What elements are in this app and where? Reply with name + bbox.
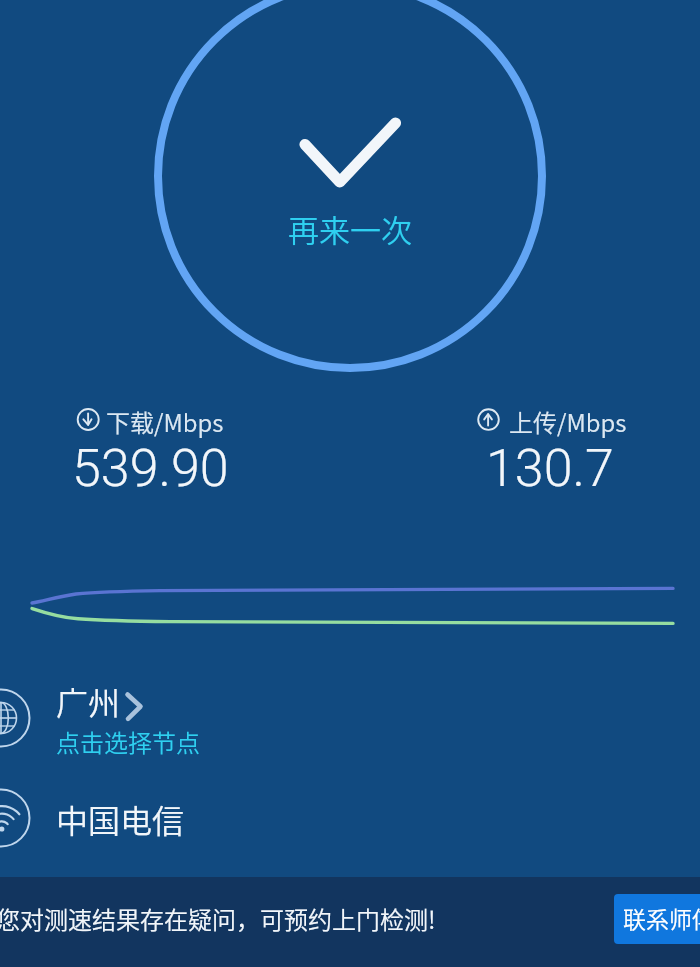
staticText: 联系师傅	[623, 901, 700, 934]
staticText: 上传/Mbps	[509, 404, 627, 439]
button[interactable]: 再来一次 / Test again	[158, 0, 542, 368]
staticText: 中国电信	[56, 796, 185, 842]
staticText: 130.7	[486, 438, 614, 499]
staticText: 您对测速结果存在疑问，可预约上门检测!	[0, 901, 436, 936]
button[interactable]: 中国电信	[0, 786, 320, 850]
staticText: 再来一次	[288, 206, 412, 246]
button[interactable]: 再来一次	[288, 206, 414, 246]
button[interactable]: 联系师傅	[614, 894, 700, 944]
staticText: 下载/Mbps	[106, 404, 224, 439]
staticText: 539.90	[72, 438, 229, 499]
button[interactable]: 广州	[0, 676, 320, 762]
staticText: 广州	[56, 678, 121, 724]
staticText: 点击选择节点	[56, 724, 200, 759]
